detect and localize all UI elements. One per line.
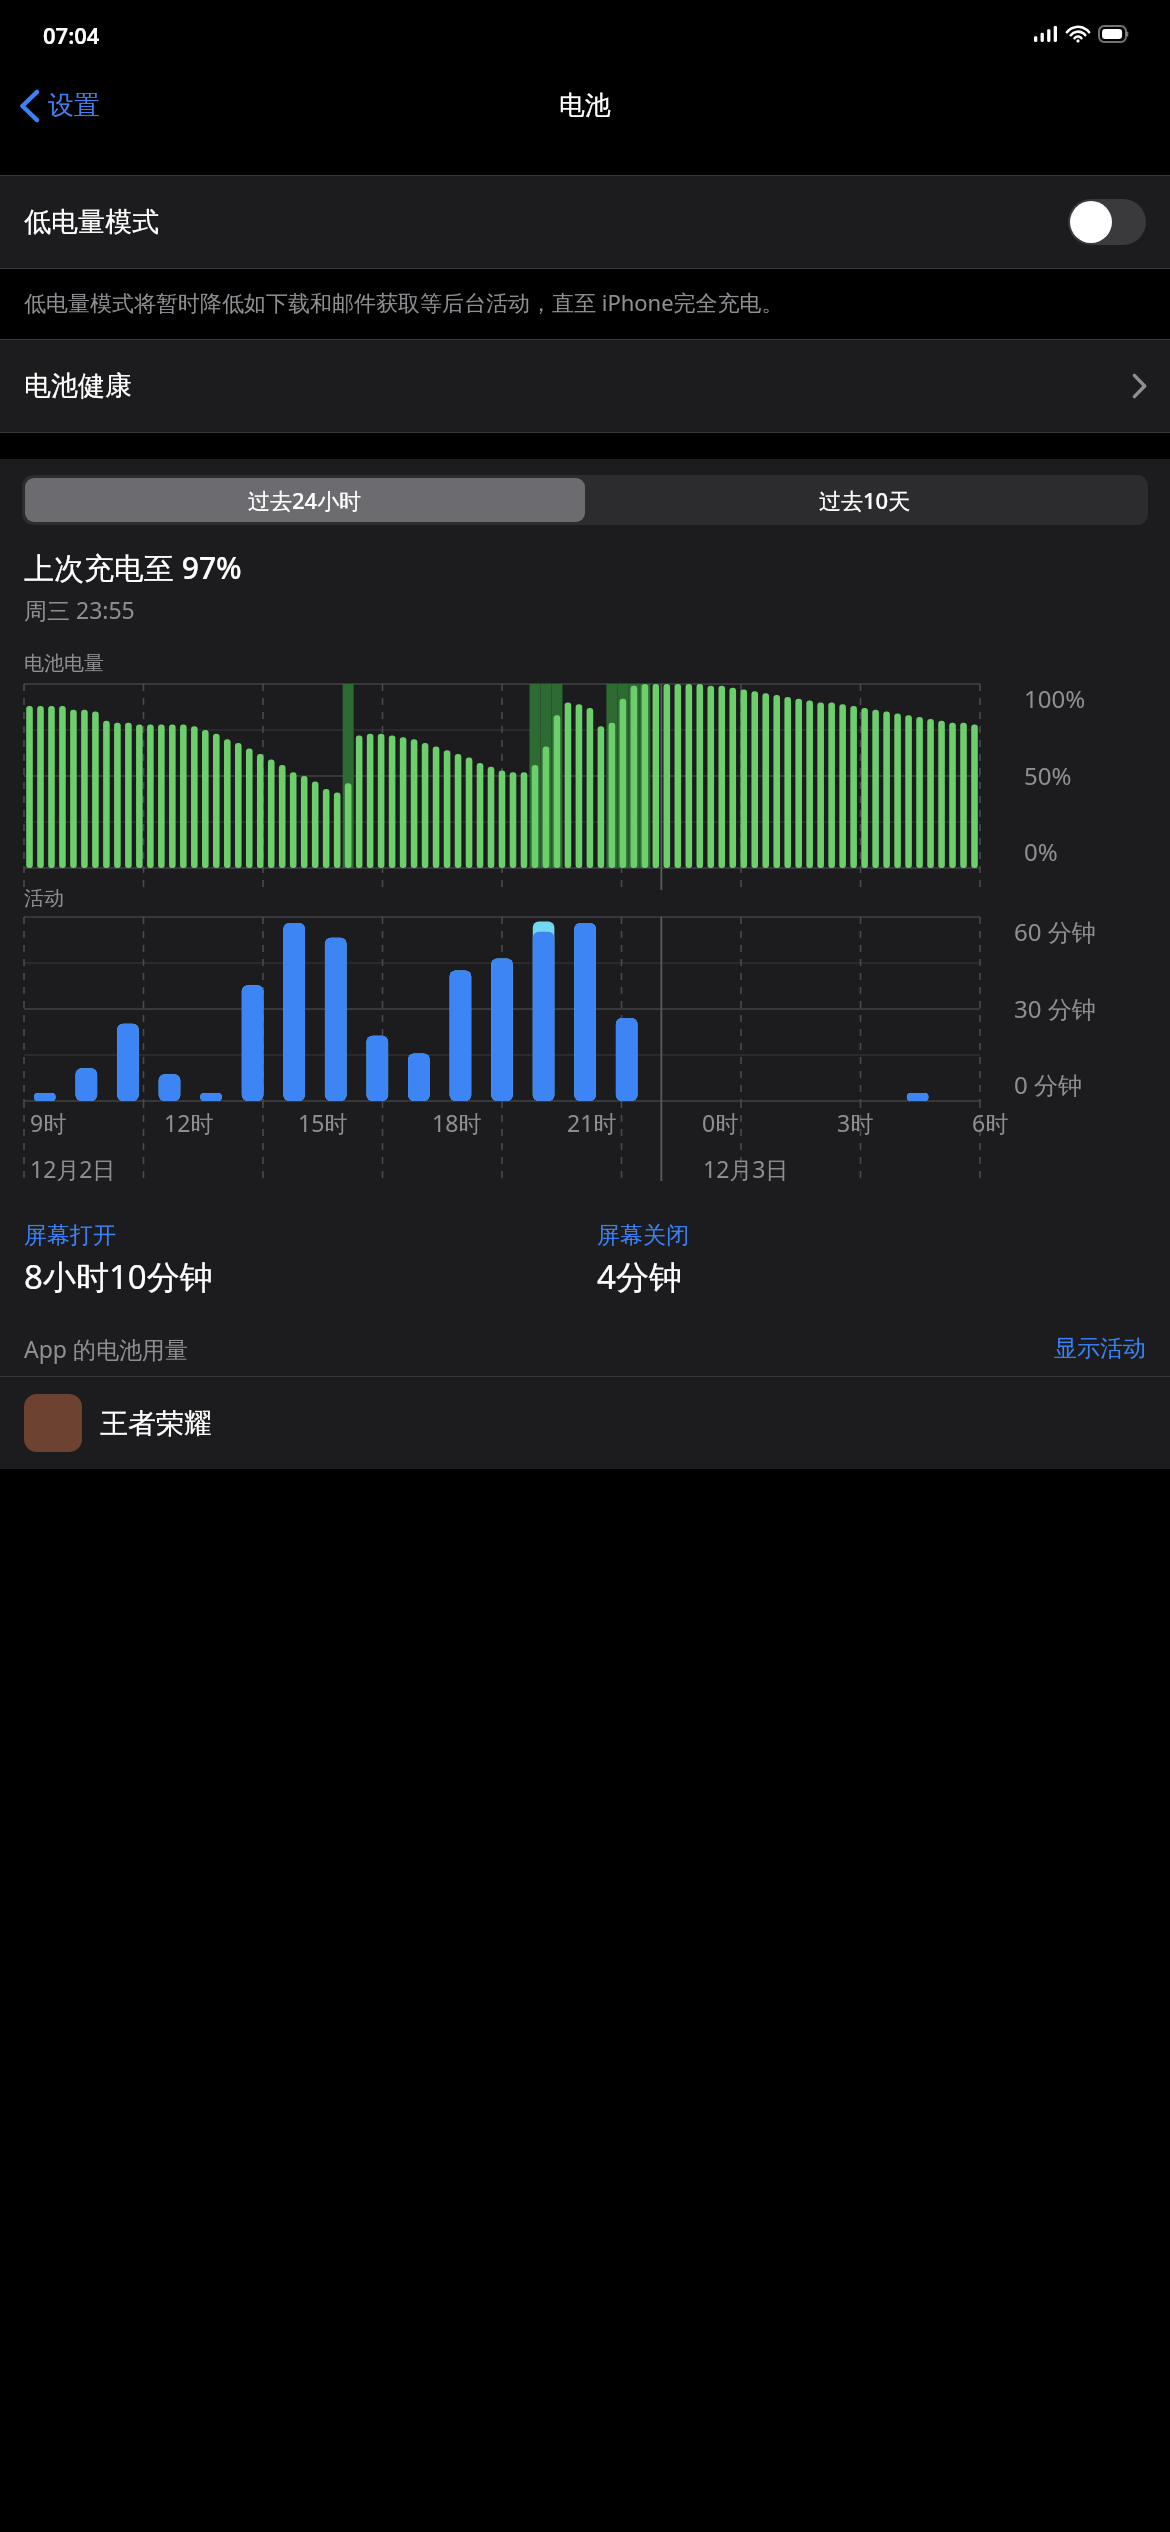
staticText: 电池电量 — [24, 651, 104, 676]
staticText: 15时 — [298, 1107, 348, 1138]
staticText: 100% — [1024, 682, 1086, 715]
staticText: 过去10天 — [819, 485, 911, 515]
button[interactable]: 低电量模式 — [0, 176, 1170, 268]
staticText: 电池健康 — [24, 369, 1133, 403]
staticText: 8小时10分钟 — [24, 1254, 213, 1299]
button[interactable]: 过去24小时 — [25, 478, 585, 522]
staticText: 周三 23:55 — [24, 594, 135, 625]
staticText: 低电量模式 — [24, 205, 1068, 239]
staticText: 0 分钟 — [1014, 1068, 1082, 1101]
staticText: 屏幕打开 — [24, 1221, 116, 1250]
other: 返回 — [20, 90, 39, 122]
button[interactable]: 低电量模式开关 — [1068, 199, 1146, 245]
staticText: 50% — [1024, 759, 1072, 792]
button[interactable]: 王者荣耀 — [0, 1377, 1170, 1469]
staticText: 4分钟 — [597, 1254, 682, 1299]
staticText: 低电量模式将暂时降低如下载和邮件获取等后台活动，直至 iPhone完全充电。 — [24, 287, 784, 317]
staticText: 设置 — [48, 89, 100, 122]
button[interactable]: 返回 — [0, 81, 116, 130]
staticText: 3时 — [837, 1107, 874, 1138]
staticText: 过去24小时 — [248, 485, 362, 515]
staticText: 12月2日 — [30, 1153, 116, 1184]
staticText: 王者荣耀 — [100, 1406, 212, 1441]
staticText: 显示活动 — [1054, 1334, 1146, 1363]
staticText: 上次充电至 97% — [24, 547, 242, 588]
staticText: 0% — [1024, 835, 1058, 868]
staticText: App 的电池用量 — [24, 1333, 1054, 1364]
staticText: 18时 — [432, 1107, 482, 1138]
button[interactable]: 过去10天 — [585, 478, 1145, 522]
staticText: 屏幕关闭 — [597, 1221, 689, 1250]
staticText: 12时 — [164, 1107, 214, 1138]
staticText: 07:04 — [43, 20, 100, 50]
staticText: 0时 — [702, 1107, 739, 1138]
button[interactable]: 电池健康 — [0, 340, 1170, 432]
staticText: 活动 — [24, 886, 64, 911]
staticText: 60 分钟 — [1014, 915, 1096, 948]
button[interactable]: 显示活动 — [1054, 1334, 1146, 1363]
staticText: 6时 — [972, 1107, 1009, 1138]
staticText: 9时 — [30, 1107, 67, 1138]
staticText: 电池 — [559, 89, 611, 122]
staticText: 12月3日 — [703, 1153, 789, 1184]
staticText: 30 分钟 — [1014, 992, 1096, 1025]
staticText: 21时 — [567, 1107, 617, 1138]
